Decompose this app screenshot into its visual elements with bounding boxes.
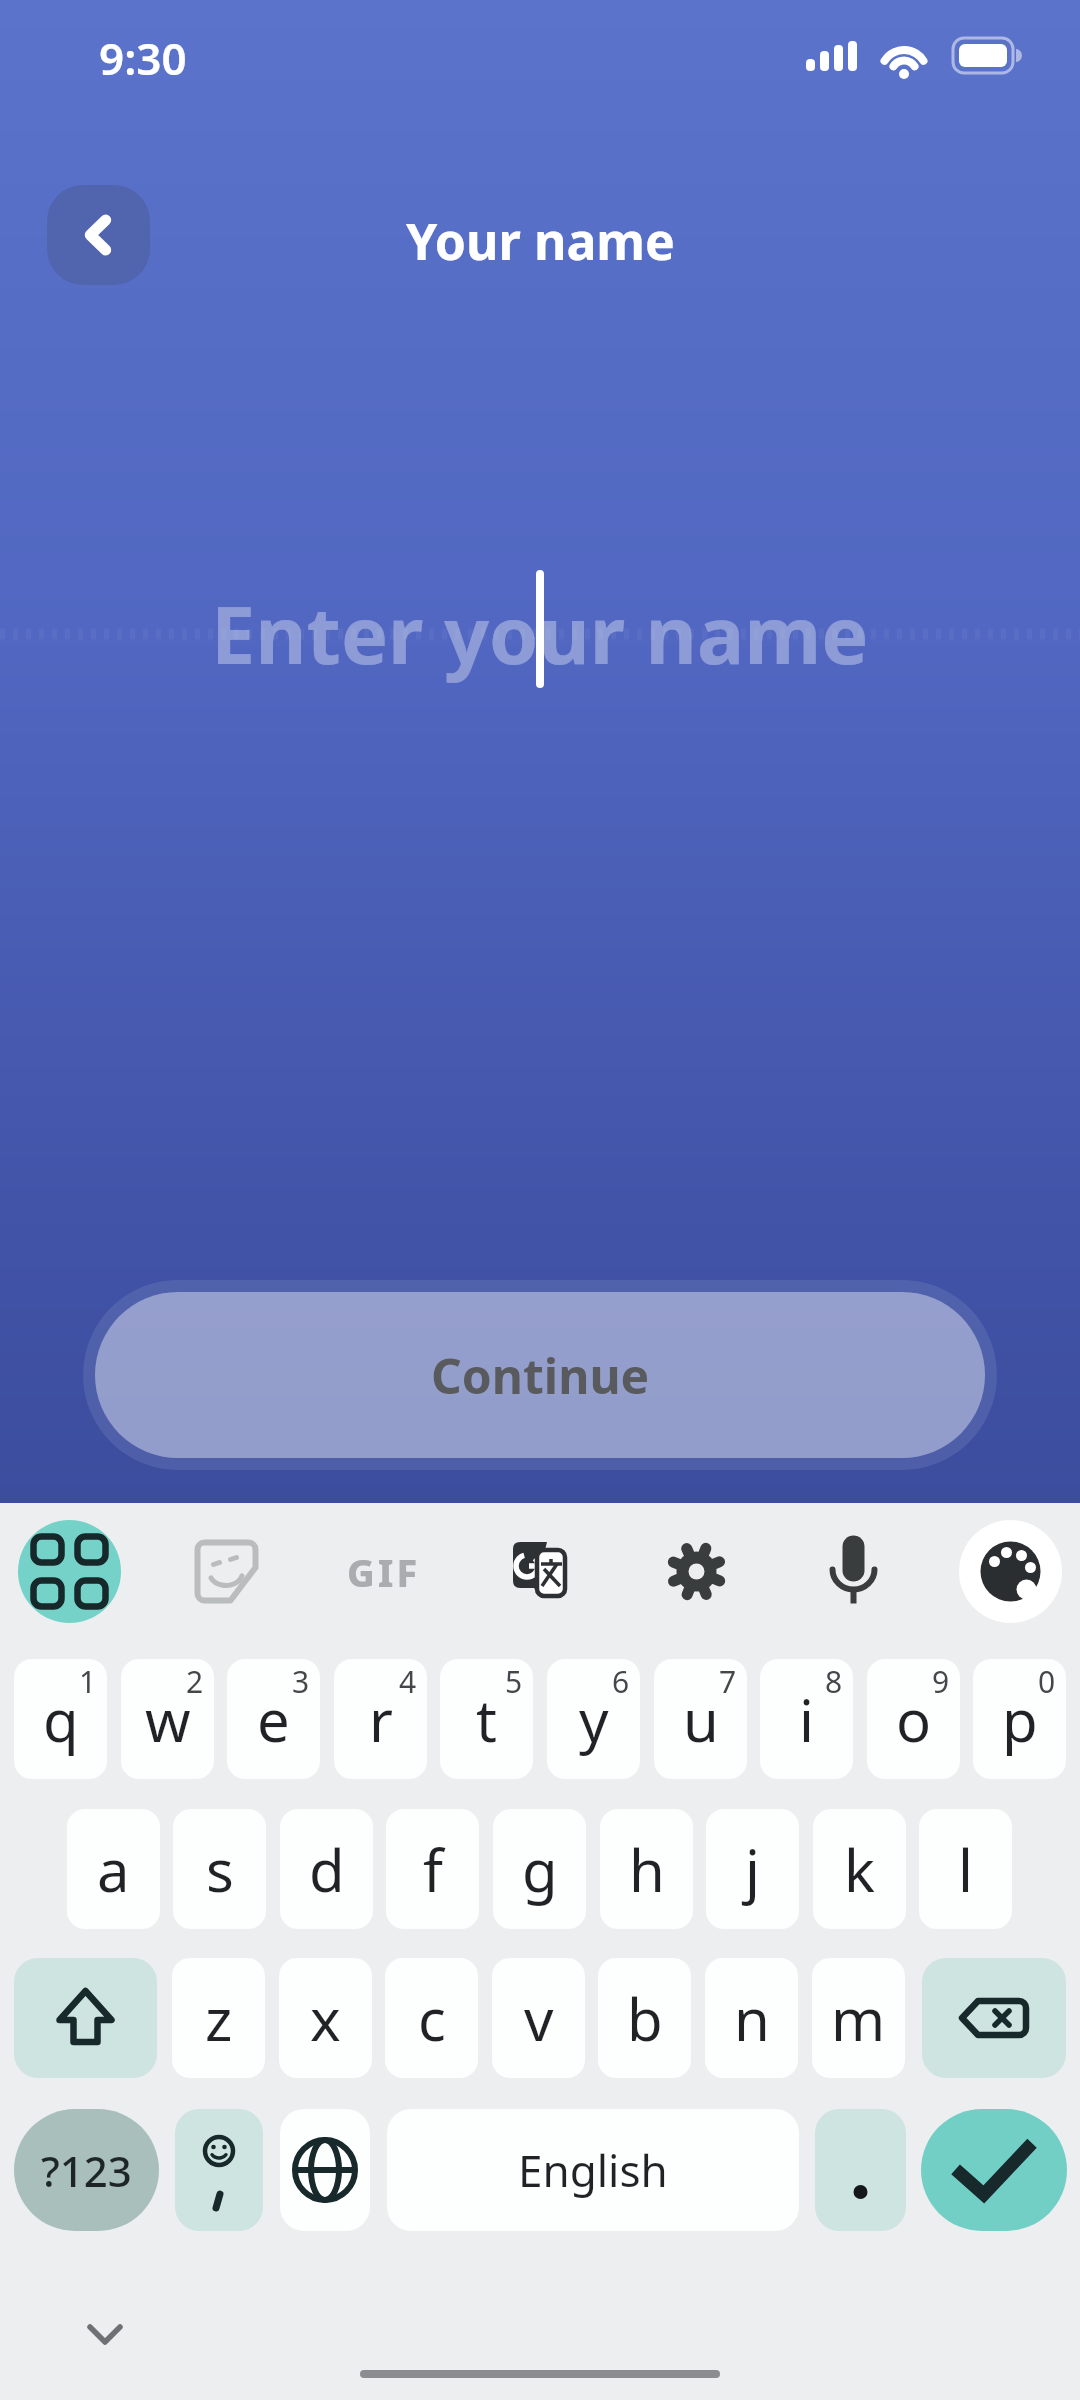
staticText: x <box>310 1979 341 2058</box>
staticText: q <box>43 1680 79 1759</box>
staticText: s <box>206 1830 234 1909</box>
staticText: 8 <box>825 1661 843 1702</box>
staticText: 6 <box>612 1661 630 1702</box>
button[interactable]: c <box>385 1958 478 2078</box>
button[interactable]: GIF <box>332 1520 435 1623</box>
button[interactable] <box>82 2318 128 2352</box>
staticText: c <box>418 1979 446 2058</box>
button[interactable]: r <box>334 1659 427 1779</box>
button[interactable]: English <box>387 2109 799 2231</box>
button[interactable] <box>645 1520 748 1623</box>
staticText: GIF <box>347 1546 421 1598</box>
staticText: 9:30 <box>99 28 187 88</box>
staticText: y <box>579 1680 609 1759</box>
button[interactable] <box>47 185 150 285</box>
button[interactable]: m <box>812 1958 905 2078</box>
staticText: 0 <box>1038 1661 1056 1702</box>
staticText: n <box>734 1979 770 2058</box>
button[interactable]: y <box>547 1659 640 1779</box>
button[interactable]: w <box>121 1659 214 1779</box>
button[interactable] <box>815 2109 906 2231</box>
button[interactable] <box>280 2109 370 2231</box>
staticText: 5 <box>505 1661 523 1702</box>
button[interactable]: n <box>705 1958 798 2078</box>
button[interactable]: ?123 <box>14 2109 159 2231</box>
staticText: b <box>627 1979 663 2058</box>
staticText: f <box>423 1830 443 1909</box>
staticText: 1 <box>79 1661 97 1702</box>
staticText: r <box>369 1680 393 1759</box>
button[interactable]: d <box>280 1809 373 1929</box>
button[interactable]: v <box>492 1958 585 2078</box>
staticText: j <box>745 1830 760 1909</box>
button[interactable]: h <box>600 1809 693 1929</box>
button[interactable]: k <box>813 1809 906 1929</box>
button[interactable]: b <box>598 1958 691 2078</box>
button[interactable]: u <box>654 1659 747 1779</box>
staticText: t <box>476 1680 497 1759</box>
staticText: m <box>831 1979 886 2058</box>
staticText: v <box>524 1979 554 2058</box>
staticText: Continue <box>431 1343 650 1408</box>
button[interactable] <box>18 1520 121 1623</box>
button[interactable] <box>959 1520 1062 1623</box>
staticText: English <box>518 2140 668 2200</box>
button[interactable]: Continue <box>95 1292 985 1458</box>
button[interactable]: l <box>919 1809 1012 1929</box>
button[interactable]: e <box>227 1659 320 1779</box>
staticText: z <box>205 1979 233 2058</box>
button[interactable] <box>175 2109 263 2231</box>
staticText: 7 <box>719 1661 737 1702</box>
button[interactable]: x <box>279 1958 372 2078</box>
button[interactable]: a <box>67 1809 160 1929</box>
staticText: a <box>97 1830 130 1909</box>
button[interactable]: s <box>173 1809 266 1929</box>
button[interactable]: o <box>867 1659 960 1779</box>
button[interactable]: j <box>706 1809 799 1929</box>
button[interactable]: q <box>14 1659 107 1779</box>
button[interactable] <box>488 1520 591 1623</box>
staticText: u <box>683 1680 719 1759</box>
staticText: h <box>629 1830 665 1909</box>
staticText: e <box>257 1680 290 1759</box>
staticText: w <box>145 1680 191 1759</box>
staticText: g <box>522 1830 558 1909</box>
button[interactable]: t <box>440 1659 533 1779</box>
staticText: p <box>1002 1680 1038 1759</box>
staticText: 9 <box>932 1661 950 1702</box>
button[interactable]: f <box>386 1809 479 1929</box>
staticText: Enter your name <box>211 580 869 688</box>
button[interactable]: i <box>760 1659 853 1779</box>
staticText: 4 <box>399 1661 417 1702</box>
button[interactable]: z <box>172 1958 265 2078</box>
staticText: 3 <box>292 1661 310 1702</box>
button[interactable]: g <box>493 1809 586 1929</box>
button[interactable] <box>922 1958 1066 2078</box>
button[interactable] <box>802 1520 905 1623</box>
staticText: ?123 <box>41 2142 132 2199</box>
staticText: o <box>896 1680 932 1759</box>
button[interactable]: p <box>973 1659 1066 1779</box>
staticText: i <box>799 1680 814 1759</box>
button[interactable] <box>14 1958 157 2078</box>
button[interactable] <box>921 2109 1067 2231</box>
staticText: l <box>958 1830 973 1909</box>
staticText: k <box>844 1830 875 1909</box>
staticText: Your name <box>406 207 675 275</box>
staticText: d <box>309 1830 345 1909</box>
staticText: 2 <box>186 1661 204 1702</box>
button[interactable] <box>175 1520 278 1623</box>
